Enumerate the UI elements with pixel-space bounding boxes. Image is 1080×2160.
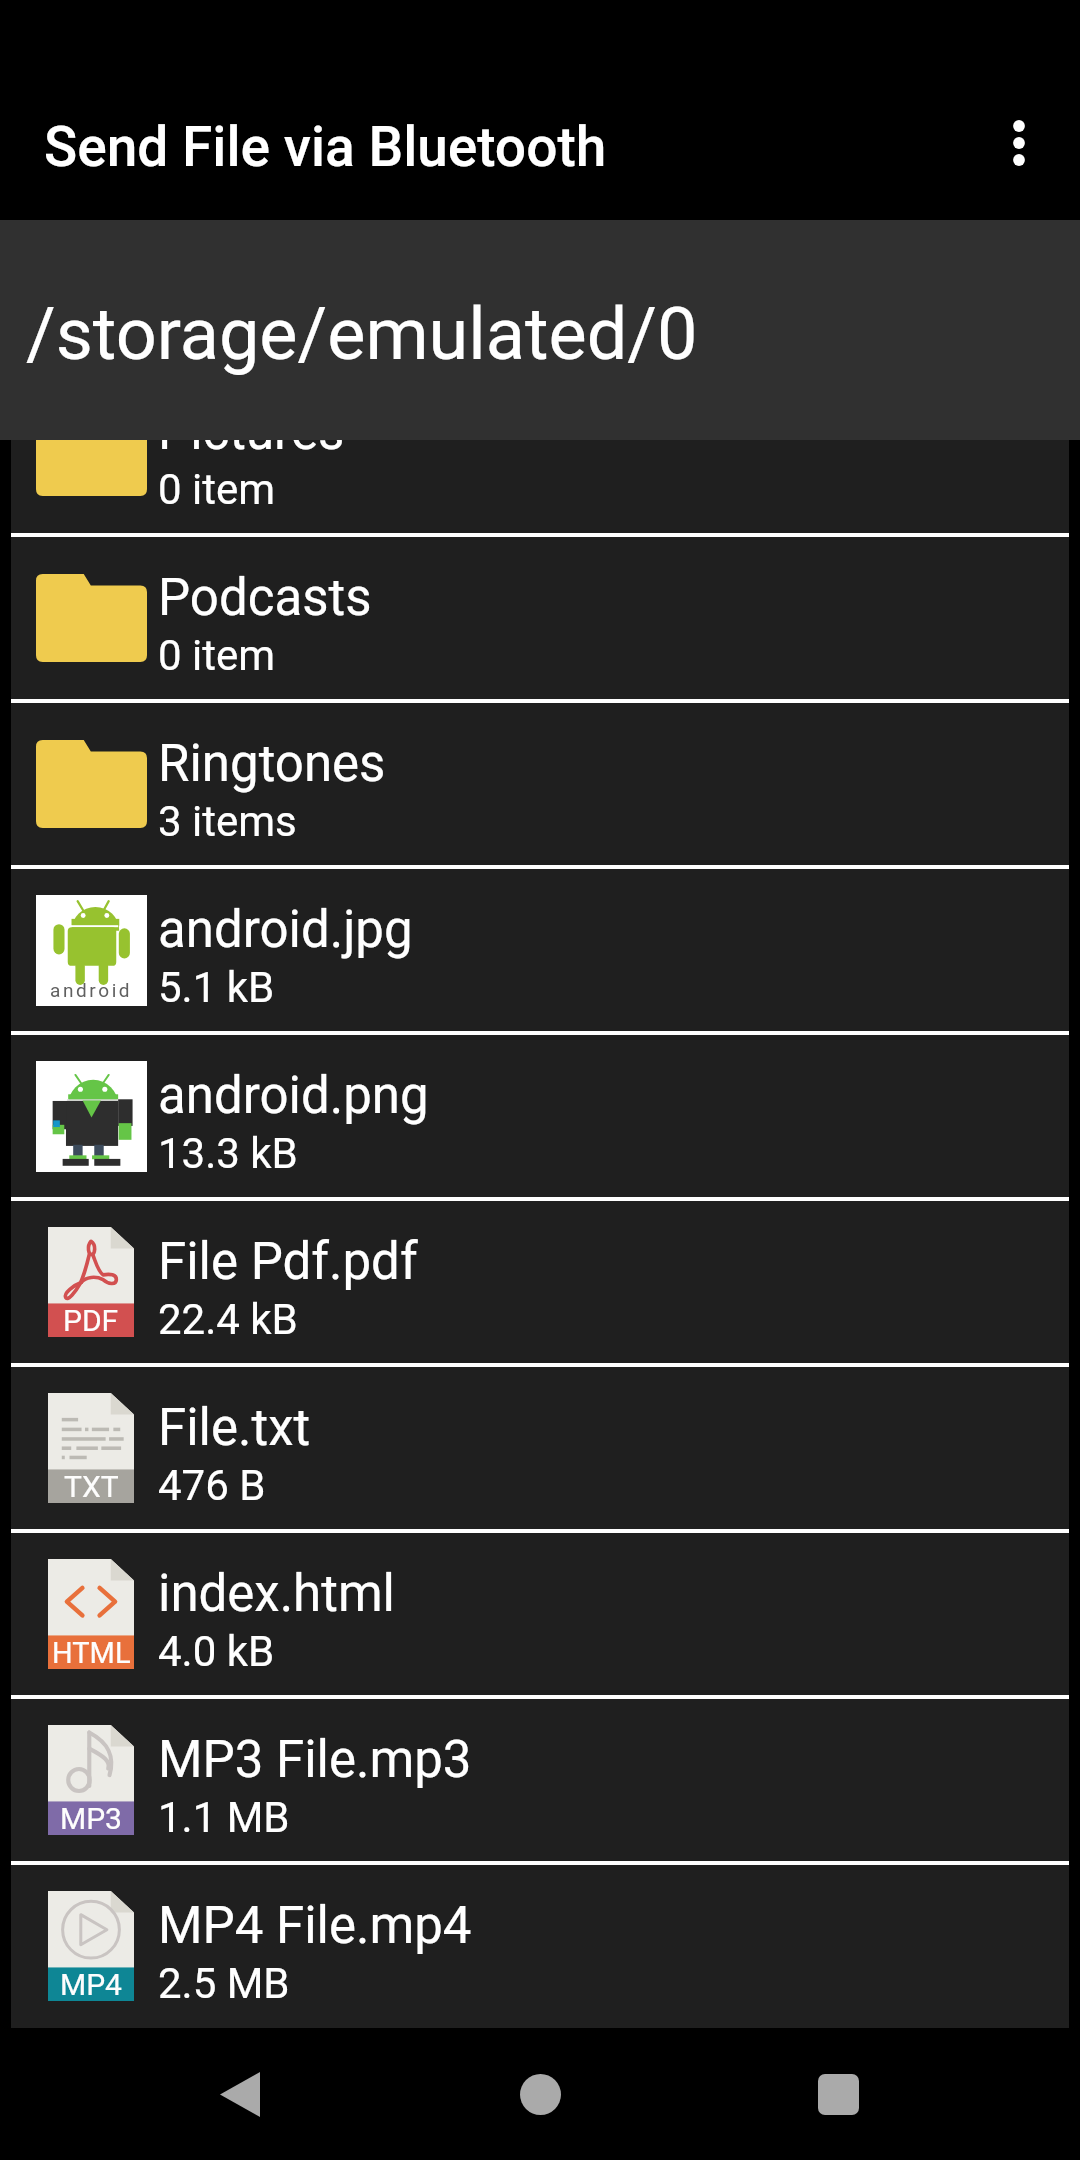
- staticText: 1.1 MB: [158, 1793, 290, 1842]
- staticText: TXT: [64, 1469, 119, 1504]
- staticText: 13.3 kB: [158, 1129, 298, 1178]
- staticText: android.png: [158, 1066, 429, 1126]
- button[interactable]: TXT: [11, 1367, 1069, 1529]
- button[interactable]: Recent apps: [768, 2028, 908, 2160]
- staticText: File.txt: [158, 1398, 311, 1458]
- staticText: 2.5 MB: [158, 1959, 290, 2008]
- staticText: /storage/emulated/0: [26, 292, 698, 376]
- button[interactable]: Home: [470, 2028, 610, 2160]
- staticText: index.html: [158, 1564, 396, 1624]
- staticText: 476 B: [158, 1461, 266, 1510]
- button[interactable]: android.png: [11, 1035, 1069, 1197]
- staticText: Send File via Bluetooth: [44, 115, 607, 179]
- staticText: 3 items: [158, 797, 297, 846]
- button[interactable]: MP4: [11, 1865, 1069, 2027]
- staticText: Ringtones: [158, 734, 386, 794]
- staticText: 5.1 kB: [158, 963, 275, 1012]
- staticText: PDF: [63, 1303, 119, 1338]
- staticText: 0 item: [158, 631, 276, 680]
- staticText: MP3: [60, 1801, 122, 1836]
- staticText: MP3 File.mp3: [158, 1730, 472, 1790]
- staticText: 0 item: [158, 465, 276, 514]
- button[interactable]: Ringtones: [11, 703, 1069, 865]
- staticText: HTML: [52, 1636, 131, 1670]
- button[interactable]: MP3: [11, 1699, 1069, 1861]
- staticText: MP4 File.mp4: [158, 1896, 472, 1956]
- staticText: android: [50, 979, 133, 1001]
- staticText: Pictures: [158, 402, 345, 462]
- button[interactable]: Back: [170, 2028, 310, 2160]
- staticText: Podcasts: [158, 568, 372, 628]
- button[interactable]: Pictures: [11, 371, 1069, 533]
- button[interactable]: HTML: [11, 1533, 1069, 1695]
- button[interactable]: /storage/emulated/0: [0, 220, 1080, 440]
- staticText: File Pdf.pdf: [158, 1232, 418, 1292]
- staticText: android.jpg: [158, 900, 413, 960]
- staticText: 4.0 kB: [158, 1627, 275, 1676]
- button[interactable]: More options: [975, 99, 1063, 187]
- staticText: MP4: [60, 1967, 122, 2002]
- staticText: 22.4 kB: [158, 1295, 298, 1344]
- button[interactable]: PDF: [11, 1201, 1069, 1363]
- button[interactable]: Podcasts: [11, 537, 1069, 699]
- button[interactable]: android: [11, 869, 1069, 1031]
